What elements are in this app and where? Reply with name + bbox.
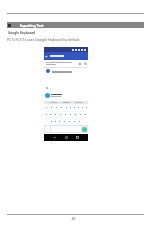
button[interactable] [49, 104, 54, 111]
button[interactable]: Inputting Text [7, 22, 144, 28]
button[interactable] [46, 69, 50, 73]
button[interactable] [84, 104, 88, 111]
button[interactable] [68, 111, 73, 118]
button[interactable] [53, 118, 57, 125]
staticText: Inputting Text [20, 23, 44, 27]
button[interactable] [48, 111, 53, 118]
staticText: Google Keyboard [8, 31, 36, 35]
button[interactable] [72, 118, 77, 125]
button[interactable] [76, 104, 80, 111]
button[interactable] [67, 118, 72, 125]
other: Back [45, 55, 48, 58]
button[interactable] [45, 93, 50, 98]
button[interactable]: Recents [76, 136, 79, 139]
button[interactable] [83, 111, 88, 118]
button[interactable] [54, 104, 59, 111]
button[interactable]: Send [82, 127, 87, 132]
button[interactable] [49, 118, 53, 125]
button[interactable] [64, 104, 68, 111]
button[interactable]: Back [44, 52, 88, 60]
button[interactable] [44, 104, 49, 111]
button[interactable] [58, 111, 63, 118]
button[interactable] [53, 111, 58, 118]
button[interactable] [57, 118, 62, 125]
button[interactable] [73, 111, 78, 118]
button[interactable] [63, 111, 68, 118]
button[interactable] [78, 111, 83, 118]
button[interactable] [44, 60, 88, 67]
button[interactable] [80, 104, 84, 111]
staticText: PC G PL/CTx uses Google Keyboard by defa… [7, 37, 81, 42]
button[interactable] [77, 118, 82, 125]
staticText: 46 [71, 216, 76, 221]
button[interactable]: Home [65, 136, 68, 139]
button[interactable] [59, 104, 64, 111]
button[interactable] [44, 111, 48, 118]
button[interactable] [62, 118, 67, 125]
button[interactable] [72, 104, 76, 111]
button[interactable]: Back [53, 136, 56, 139]
button[interactable] [68, 104, 72, 111]
